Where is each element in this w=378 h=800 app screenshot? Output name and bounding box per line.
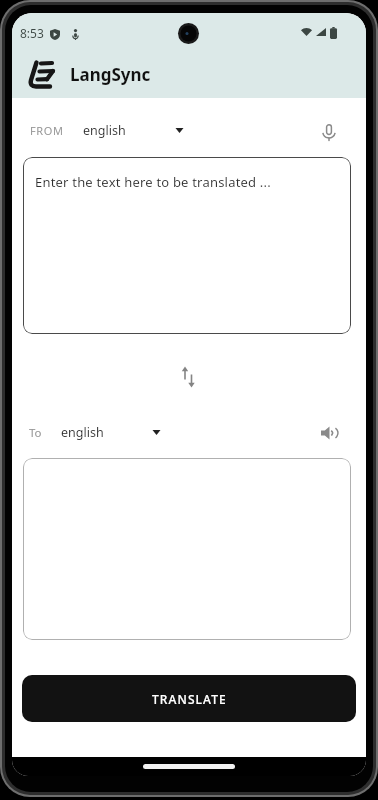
button[interactable] [23,458,351,640]
button[interactable] [315,419,343,447]
staticText: LangSync [70,63,151,86]
button[interactable]: To [24,418,184,448]
button[interactable]: TRANSLATE [22,675,356,722]
staticText: english [83,122,126,139]
staticText: Enter the text here to be translated ... [35,173,271,191]
button[interactable]: Enter the text here to be translated ... [23,157,351,334]
staticText: FROM [30,123,64,138]
staticText: english [61,424,104,441]
staticText: 8:53 [20,25,44,41]
staticText: To [29,425,42,441]
button[interactable] [174,363,202,391]
button[interactable]: FROM [24,116,204,146]
staticText: TRANSLATE [152,691,227,707]
button[interactable] [315,118,343,146]
